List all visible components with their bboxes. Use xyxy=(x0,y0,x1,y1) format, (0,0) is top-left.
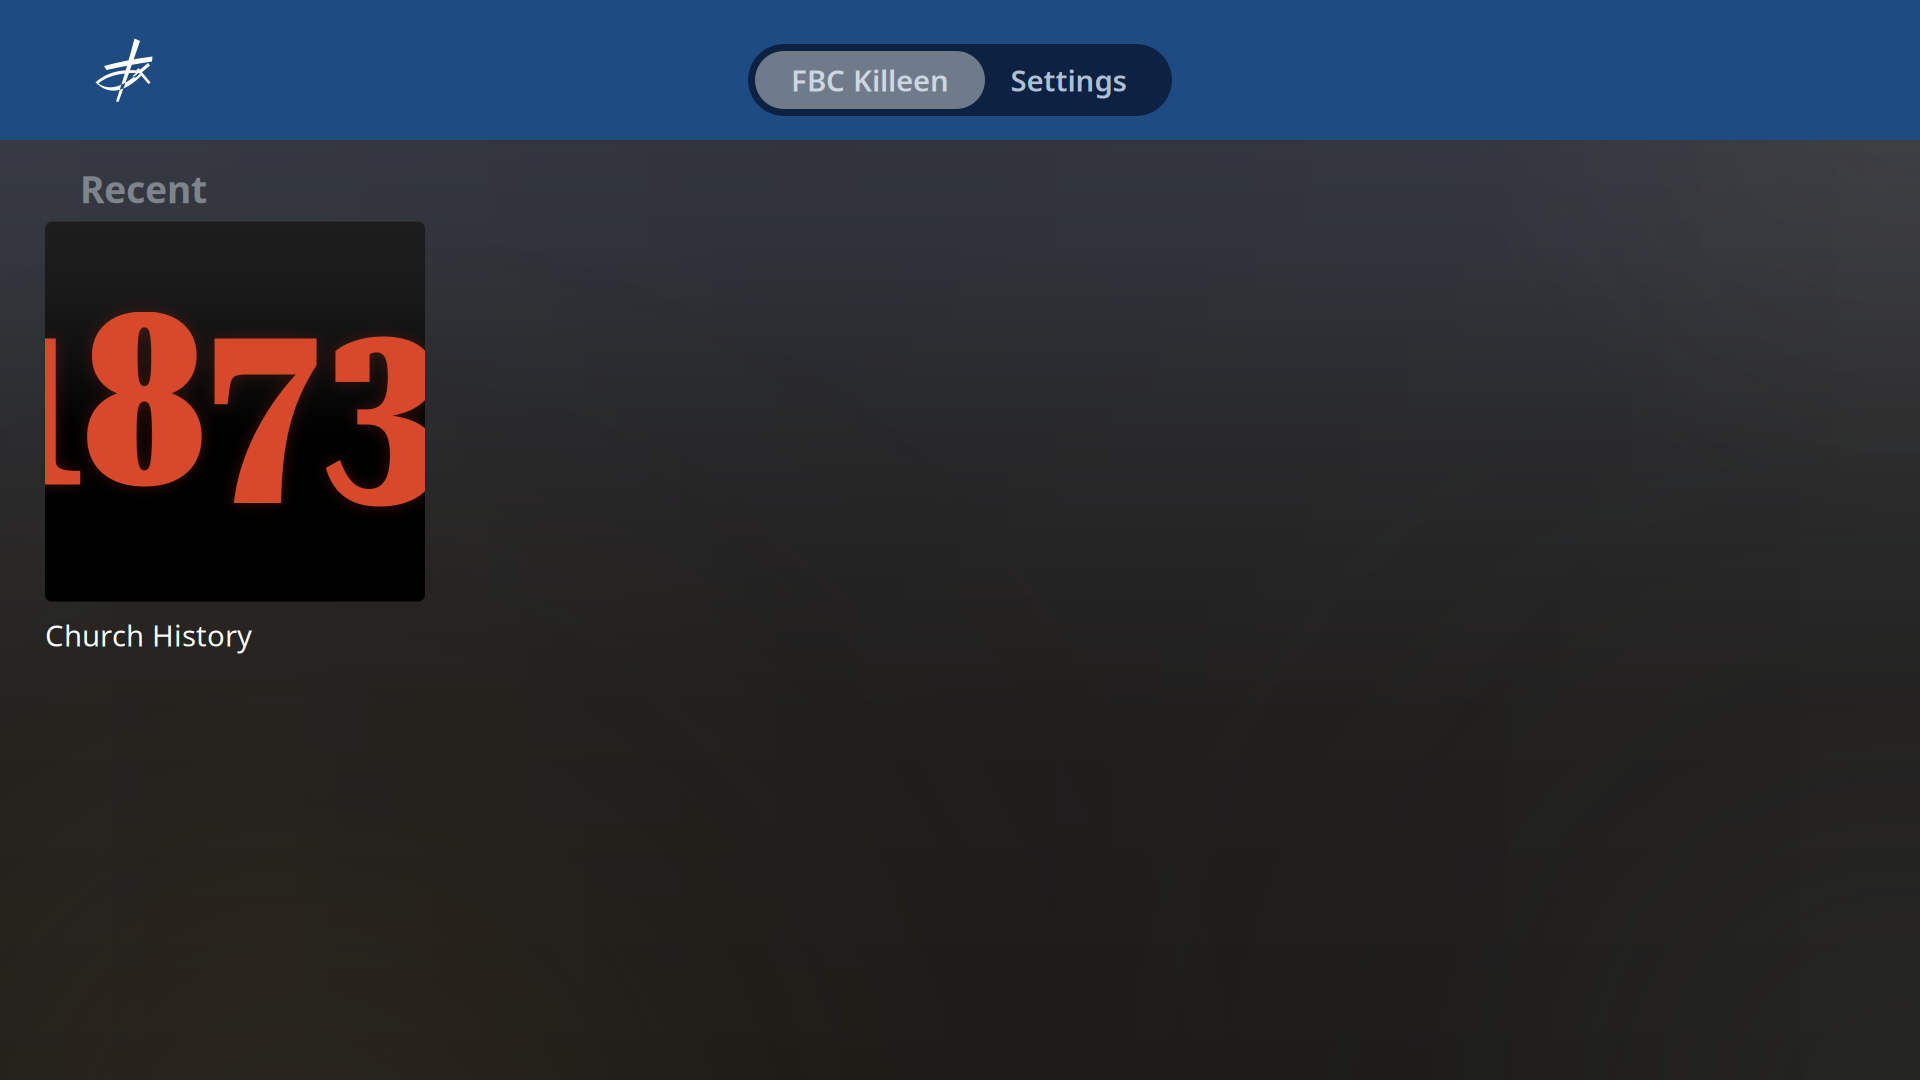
button[interactable]: First Baptist Church Killeen xyxy=(82,27,167,112)
button[interactable]: 1873 xyxy=(0,214,425,655)
staticText: FBC Killeen xyxy=(791,60,949,99)
staticText: Recent xyxy=(80,164,207,214)
staticText: Church History xyxy=(45,616,252,655)
button[interactable]: Settings xyxy=(985,51,1152,109)
button[interactable]: FBC Killeen xyxy=(755,51,985,109)
staticText: Settings xyxy=(1010,60,1126,99)
staticText: 1873 xyxy=(0,262,442,543)
